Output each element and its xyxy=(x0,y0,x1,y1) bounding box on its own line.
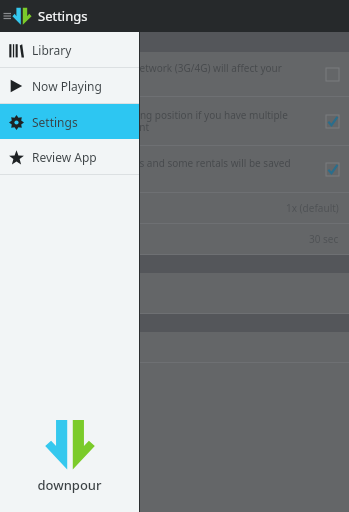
staticText: Settings xyxy=(32,114,78,130)
staticText: Streaming over a cellular network (3G/4G… xyxy=(14,61,303,87)
staticText: Review App xyxy=(32,149,97,165)
staticText: 30 sec xyxy=(309,232,339,246)
button[interactable]: Review App xyxy=(0,139,139,174)
staticText: Use an SD card - downloads and some rent… xyxy=(14,156,303,182)
staticText: downpour xyxy=(37,476,102,494)
staticText: 1x (default) xyxy=(286,201,339,215)
staticText: Library xyxy=(32,42,72,58)
staticText: Settings xyxy=(38,7,88,25)
button[interactable]: Library xyxy=(0,32,139,67)
button[interactable]: Settings xyxy=(0,104,139,139)
button[interactable]: Open navigation drawer xyxy=(0,0,12,32)
staticText: Now Playing xyxy=(32,78,102,94)
staticText: Remember your last listening position if… xyxy=(14,108,303,134)
button[interactable]: Now Playing xyxy=(0,68,139,103)
